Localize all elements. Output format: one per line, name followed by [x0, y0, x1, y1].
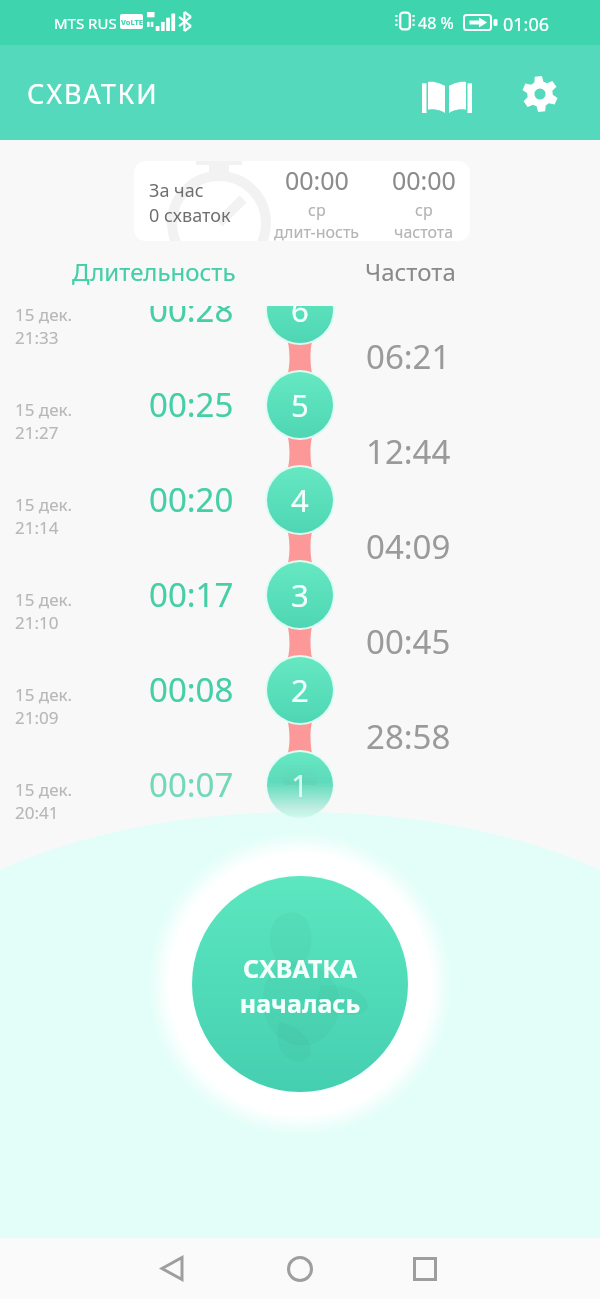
button[interactable]: Back	[137, 1238, 207, 1299]
staticText: 15 дек.	[15, 493, 73, 516]
button[interactable]: Home	[265, 1238, 335, 1299]
staticText: длит-ность	[274, 221, 360, 241]
staticText: 3	[291, 574, 309, 616]
staticText: 00:25	[149, 382, 234, 427]
staticText: 15 дек.	[15, 683, 73, 706]
staticText: Длительность	[72, 255, 236, 288]
staticText: ср	[415, 199, 433, 221]
staticText: 28:58	[366, 714, 451, 759]
staticText: 06:21	[366, 334, 451, 379]
button[interactable]: Guide	[422, 80, 472, 113]
staticText: 15 дек.	[15, 398, 73, 421]
staticText: За час	[149, 178, 204, 203]
staticText: 21:14	[15, 516, 59, 539]
staticText: 00:45	[366, 619, 451, 664]
staticText: VoLTE	[121, 17, 143, 27]
staticText: 00:07	[149, 762, 234, 807]
button[interactable]: Recents	[390, 1238, 460, 1299]
button[interactable]: 3	[267, 562, 333, 628]
button[interactable]: 2	[267, 657, 333, 723]
staticText: СХВАТКИ	[27, 75, 159, 112]
staticText: 1	[291, 764, 309, 806]
staticText: Частота	[365, 255, 456, 288]
staticText: ср	[308, 199, 326, 221]
staticText: 15 дек.	[15, 588, 73, 611]
button[interactable]: СХВАТКА	[192, 876, 408, 1092]
staticText: 00:08	[149, 667, 234, 712]
staticText: 2	[291, 669, 309, 711]
staticText: 6	[291, 306, 309, 331]
button[interactable]: 4	[267, 467, 333, 533]
staticText: 00:00	[285, 163, 349, 197]
staticText: 21:09	[15, 706, 59, 729]
staticText: 00:00	[392, 163, 456, 197]
button[interactable]: 5	[267, 372, 333, 438]
staticText: началась	[192, 986, 408, 1020]
staticText: 15 дек.	[15, 778, 73, 801]
staticText: 21:33	[15, 326, 59, 349]
staticText: частота	[394, 221, 454, 241]
staticText: 15 дек.	[15, 306, 73, 326]
staticText: 21:27	[15, 421, 59, 444]
button[interactable]: 1	[267, 752, 333, 818]
staticText: СХВАТКА	[192, 951, 408, 985]
staticText: 04:09	[366, 524, 451, 569]
button[interactable]: За час	[134, 161, 470, 241]
staticText: 48 %	[418, 12, 454, 34]
button[interactable]: Settings	[522, 76, 558, 112]
staticText: 12:44	[366, 429, 451, 474]
button[interactable]: 6	[267, 306, 333, 343]
staticText: 21:10	[15, 611, 59, 634]
staticText: 00:17	[149, 572, 234, 617]
staticText: 00:28	[149, 306, 234, 332]
staticText: 20:41	[15, 801, 59, 824]
staticText: 00:20	[149, 477, 234, 522]
staticText: 0 схваток	[149, 203, 231, 228]
staticText: 4	[291, 479, 309, 521]
staticText: 01:06	[503, 12, 550, 37]
staticText: 5	[291, 384, 309, 426]
staticText: MTS RUS	[54, 13, 117, 33]
